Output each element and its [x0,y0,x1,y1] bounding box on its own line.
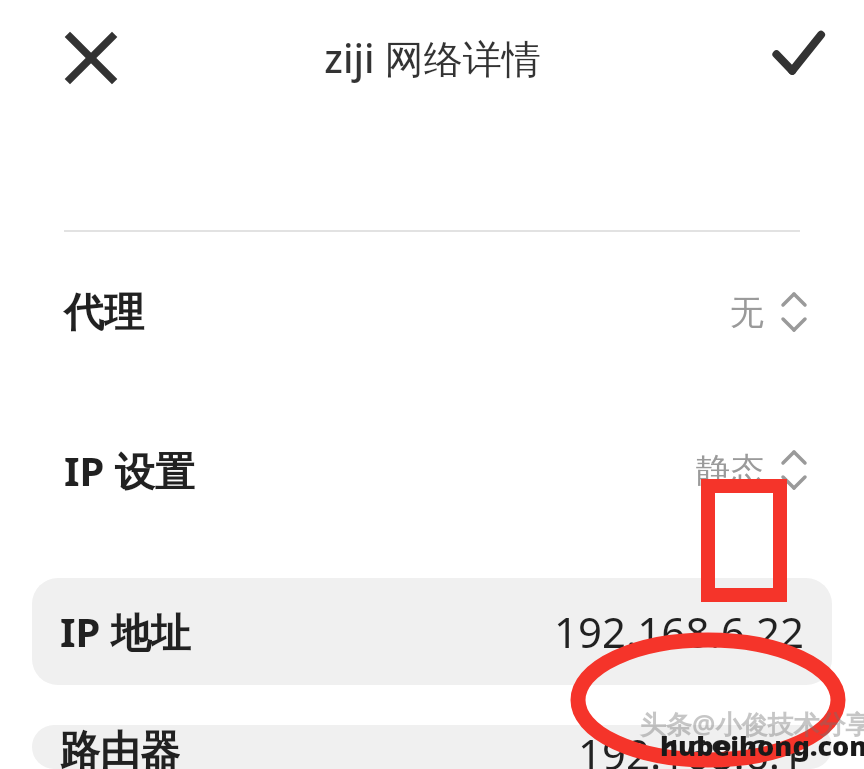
button[interactable]: 代理 [0,264,864,360]
staticText: 192.168.6.1 [578,725,804,769]
staticText: IP 地址 [60,604,191,659]
button[interactable]: IP 地址 [32,578,832,685]
staticText: 头条@小俊技术分享 [640,706,864,742]
staticText: ziji 网络详情 [324,31,541,84]
staticText: 192.168.6.22 [554,603,804,660]
button[interactable]: Confirm [762,19,834,91]
button[interactable]: IP 设置 [0,422,864,518]
staticText: 静态 [696,449,764,492]
button[interactable]: 路由器 [32,725,832,769]
button[interactable]: Close [55,22,127,94]
staticText: hubeihong.com [660,727,864,764]
staticText: IP 设置 [64,443,195,498]
staticText: 代理 [64,287,144,337]
staticText: 路由器 [60,725,180,769]
staticText: 无 [730,291,764,334]
